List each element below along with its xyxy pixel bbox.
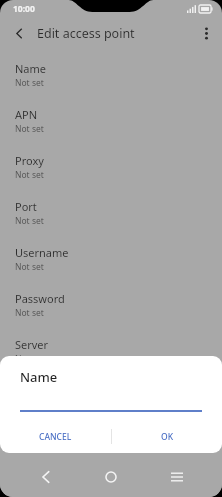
button[interactable]: Recent apps	[157, 457, 197, 497]
button[interactable]: More options	[195, 22, 217, 44]
staticText: Not set	[15, 215, 44, 227]
staticText: CANCEL	[39, 431, 72, 443]
button[interactable]: OK	[112, 424, 222, 449]
staticText: 10:00	[13, 3, 35, 15]
button[interactable]: Port	[0, 194, 222, 240]
staticText: Proxy	[15, 153, 44, 168]
staticText: Not set	[15, 307, 44, 319]
staticText: Not set	[15, 77, 44, 89]
staticText: APN	[15, 107, 38, 122]
button[interactable]: Password	[0, 286, 222, 332]
staticText: Username	[15, 245, 69, 260]
button[interactable]: Back	[8, 22, 30, 44]
staticText: Not set	[15, 123, 44, 135]
staticText: Not set	[15, 261, 44, 273]
staticText: Edit access point	[37, 25, 135, 42]
staticText: Not set	[15, 169, 44, 181]
staticText: Server	[15, 337, 49, 352]
staticText: OK	[161, 431, 174, 443]
staticText: Password	[15, 291, 65, 306]
staticText: Port	[15, 199, 37, 214]
button[interactable]: Back	[26, 457, 66, 497]
button[interactable]: CANCEL	[0, 424, 111, 449]
button[interactable]: Username	[0, 240, 222, 286]
staticText: Not set	[15, 353, 44, 365]
staticText: Name	[20, 368, 58, 386]
button[interactable]: Proxy	[0, 148, 222, 194]
button[interactable]: Name	[0, 56, 222, 102]
button[interactable]: Home	[91, 457, 131, 497]
button[interactable]: APN	[0, 102, 222, 148]
button[interactable]: Server	[0, 332, 222, 378]
staticText: Name	[15, 61, 47, 76]
